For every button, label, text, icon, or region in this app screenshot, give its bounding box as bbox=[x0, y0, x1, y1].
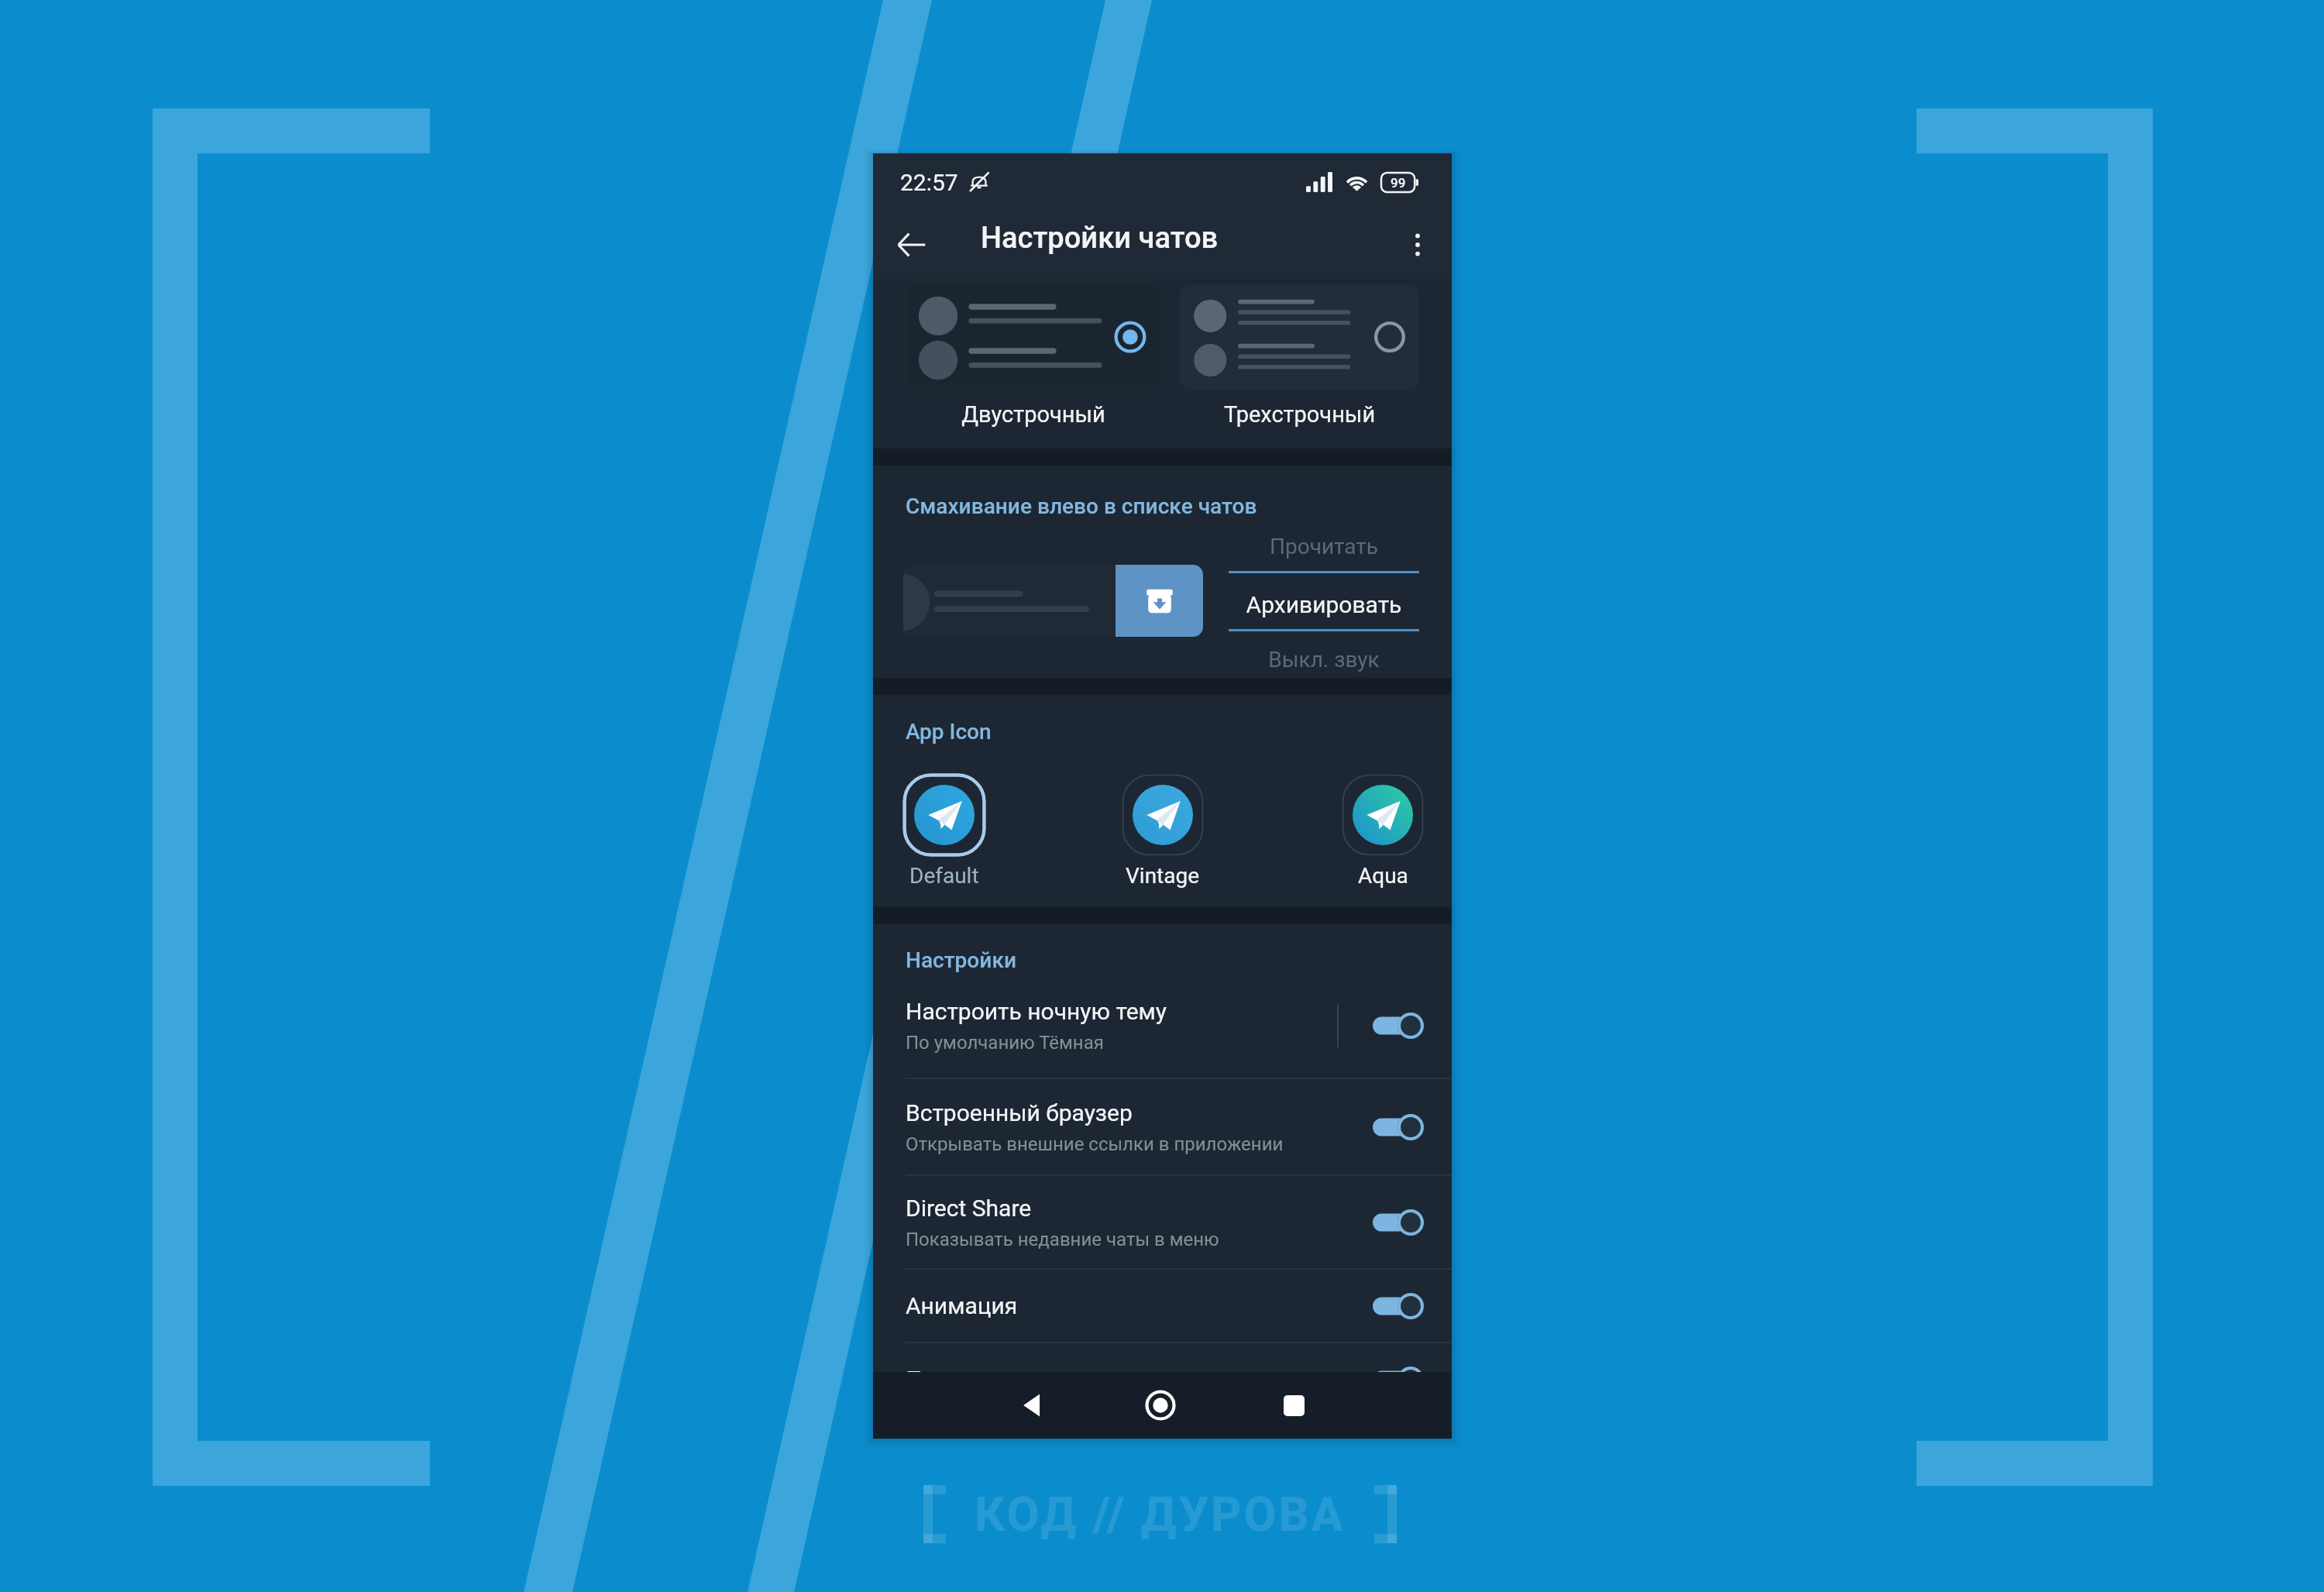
staticText: Настройки чатов bbox=[981, 221, 1219, 256]
button[interactable]: Анимация bbox=[873, 1270, 1452, 1342]
staticText: Aqua bbox=[1358, 863, 1408, 889]
button[interactable]: Встроенный браузер bbox=[873, 1079, 1452, 1174]
button[interactable]: Плавность bbox=[873, 1343, 1452, 1415]
staticText: Выкл. звук bbox=[1229, 647, 1419, 672]
button[interactable]: Direct Share bbox=[873, 1176, 1452, 1268]
button[interactable]: Back bbox=[878, 211, 946, 279]
staticText: App Icon bbox=[906, 719, 992, 744]
staticText: Архивировать bbox=[1229, 591, 1419, 618]
button[interactable] bbox=[906, 284, 1160, 390]
button[interactable]: Прочитать bbox=[1229, 526, 1419, 569]
button[interactable]: Default bbox=[890, 774, 999, 889]
staticText: Настройки bbox=[906, 947, 1016, 973]
staticText: Показывать недавние чаты в меню bbox=[906, 1229, 1219, 1250]
button[interactable]: Recent apps bbox=[1250, 1372, 1338, 1439]
staticText: Смахивание влево в списке чатов bbox=[906, 493, 1257, 519]
button[interactable]: Настроить ночную тему bbox=[873, 974, 1452, 1078]
button[interactable]: More options bbox=[1384, 211, 1452, 279]
staticText: Трехстрочный bbox=[1180, 401, 1419, 428]
staticText: Плавность bbox=[906, 1366, 1025, 1393]
staticText: Прочитать bbox=[1229, 534, 1419, 559]
button[interactable]: Home bbox=[1116, 1372, 1205, 1439]
button[interactable]: Архивировать bbox=[1229, 573, 1419, 629]
button[interactable]: Aqua bbox=[1329, 774, 1437, 889]
staticText: Открывать внешние ссылки в приложении bbox=[906, 1133, 1284, 1155]
staticText: Встроенный браузер bbox=[906, 1099, 1133, 1126]
staticText: 99 bbox=[1391, 175, 1406, 191]
button[interactable]: Выкл. звук bbox=[1229, 633, 1419, 676]
button[interactable]: Vintage bbox=[1109, 774, 1217, 889]
staticText: КОД // ДУРОВА bbox=[975, 1487, 1346, 1542]
staticText: По умолчанию Тёмная bbox=[906, 1032, 1104, 1054]
staticText: Default bbox=[909, 863, 979, 889]
button[interactable]: Back bbox=[988, 1372, 1076, 1439]
staticText: Анимация bbox=[906, 1292, 1018, 1319]
staticText: Direct Share bbox=[906, 1195, 1032, 1222]
staticText: Vintage bbox=[1126, 863, 1200, 889]
staticText: Двустрочный bbox=[906, 401, 1160, 428]
staticText: 22:57 bbox=[900, 169, 958, 196]
button[interactable] bbox=[1180, 284, 1419, 390]
staticText: Настроить ночную тему bbox=[906, 998, 1167, 1025]
